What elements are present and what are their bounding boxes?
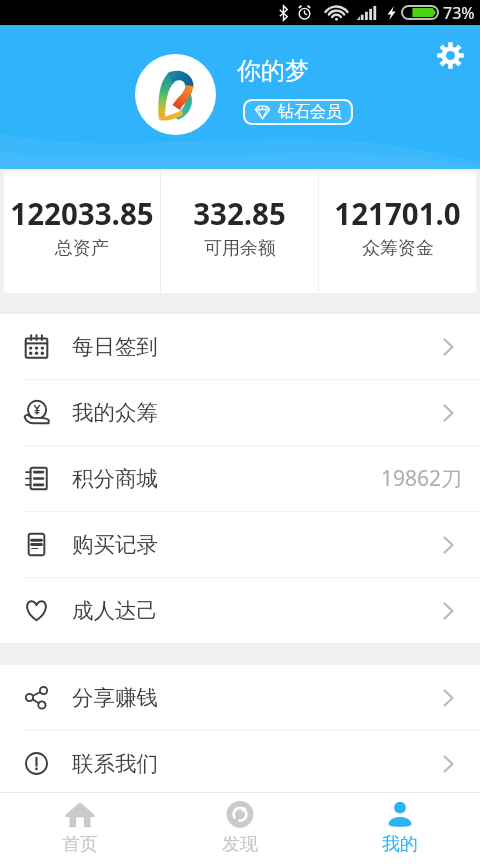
staticText: 成人达己 [72, 597, 158, 624]
staticText: 每日签到 [72, 333, 158, 360]
staticText: 购买记录 [72, 531, 158, 558]
button[interactable]: 我的众筹 [0, 380, 480, 445]
button[interactable]: 钻石会员 [243, 99, 353, 125]
staticText: 73% [443, 2, 475, 24]
staticText: 122033.85 [10, 193, 154, 233]
staticText: 分享赚钱 [72, 684, 158, 711]
staticText: 积分商城 [72, 465, 158, 492]
staticText: 众筹资金 [362, 237, 434, 260]
staticText: 19862刀 [381, 464, 463, 493]
button[interactable]: Settings [433, 38, 467, 72]
staticText: 332.85 [193, 193, 286, 233]
staticText: 我的 [382, 833, 418, 856]
staticText: 可用余额 [204, 237, 276, 260]
button[interactable]: 联系我们 [0, 731, 480, 796]
button[interactable]: 购买记录 [0, 512, 480, 577]
staticText: 联系我们 [72, 750, 158, 777]
staticText: 发现 [222, 833, 258, 856]
button[interactable]: 发现 [160, 793, 320, 864]
button[interactable] [135, 54, 216, 135]
staticText: 121701.0 [334, 193, 461, 233]
button[interactable]: 积分商城 [0, 446, 480, 511]
button[interactable]: 122033.85 [4, 171, 160, 293]
staticText: 我的众筹 [72, 399, 158, 426]
button[interactable]: 121701.0 [319, 171, 476, 293]
button[interactable]: 我的 [320, 793, 480, 864]
button[interactable]: 成人达己 [0, 578, 480, 643]
staticText: 首页 [62, 833, 98, 856]
button[interactable]: 每日签到 [0, 314, 480, 379]
staticText: 总资产 [55, 237, 109, 260]
staticText: 你的梦 [237, 56, 309, 86]
staticText: 钻石会员 [278, 102, 342, 122]
button[interactable]: 332.85 [161, 171, 318, 293]
button[interactable]: 首页 [0, 793, 160, 864]
button[interactable]: 分享赚钱 [0, 665, 480, 730]
